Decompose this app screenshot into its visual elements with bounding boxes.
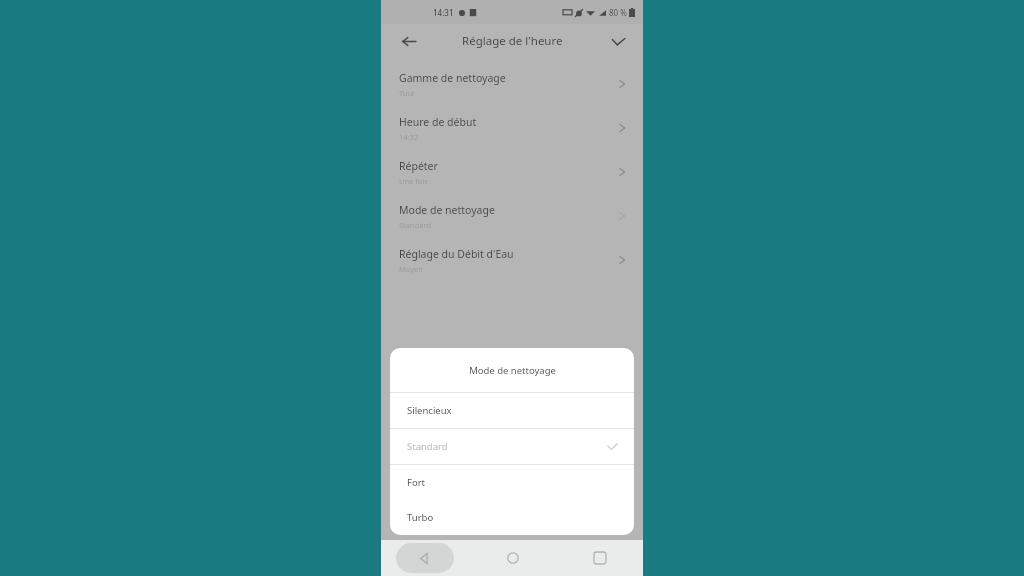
staticText: Standard (399, 220, 432, 230)
staticText: Gamme de nettoyage (399, 71, 506, 85)
button[interactable]: Mode de nettoyage (381, 194, 643, 238)
button[interactable]: Recents (556, 540, 643, 576)
staticText: Réglage de l'heure (462, 33, 563, 49)
staticText: Répéter (399, 159, 438, 173)
staticText: Réglage du Débit d'Eau (399, 247, 514, 261)
button[interactable]: Home (469, 540, 556, 576)
button[interactable]: Fort (390, 465, 634, 500)
button[interactable]: Turbo (390, 500, 634, 535)
staticText: 14:32 (399, 132, 419, 142)
button[interactable]: Silencieux (390, 393, 634, 428)
staticText: Silencieux (407, 404, 452, 417)
button[interactable]: Heure de début (381, 106, 643, 150)
staticText: Tuul (399, 88, 414, 98)
button[interactable]: Back (381, 540, 469, 576)
button[interactable]: Gamme de nettoyage (381, 62, 643, 106)
staticText: Mode de nettoyage (469, 364, 556, 377)
button[interactable]: Standard (390, 429, 634, 464)
button[interactable]: Back (395, 28, 421, 54)
button[interactable]: Répéter (381, 150, 643, 194)
staticText: 14:31 (433, 7, 454, 18)
staticText: 80 % (609, 7, 627, 18)
staticText: Mode de nettoyage (399, 203, 495, 217)
staticText: Standard (407, 440, 448, 453)
staticText: Fort (407, 476, 426, 489)
staticText: Turbo (407, 511, 434, 524)
button[interactable]: Réglage du Débit d'Eau (381, 238, 643, 282)
staticText: Moyen (399, 264, 423, 274)
staticText: Heure de début (399, 115, 477, 129)
button[interactable]: Confirm (605, 28, 631, 54)
staticText: Une fois (399, 176, 428, 186)
